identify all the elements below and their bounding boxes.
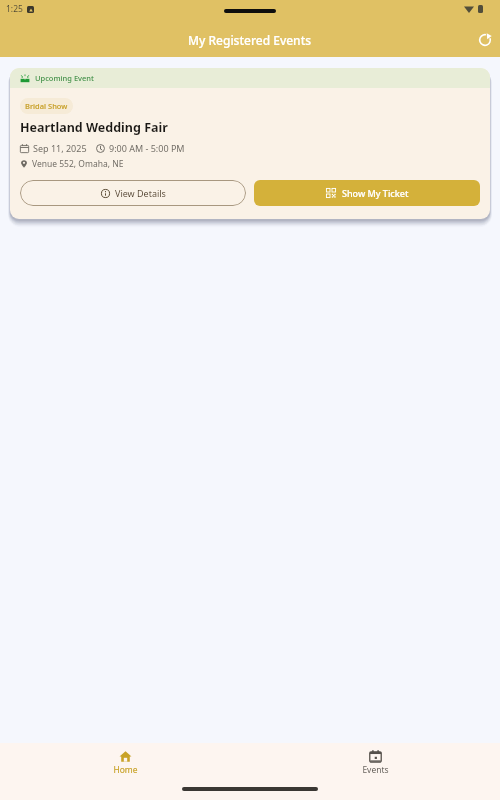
staticText: 9:00 AM - 5:00 PM: [109, 142, 185, 154]
staticText: Home: [113, 764, 138, 776]
staticText: Bridal Show: [25, 101, 68, 111]
staticText: Show My Ticket: [342, 187, 409, 199]
staticText: Heartland Wedding Fair: [20, 119, 168, 136]
button[interactable]: Refresh: [472, 27, 498, 53]
button[interactable]: Show My Ticket: [254, 180, 480, 206]
button[interactable]: Home: [0, 750, 250, 776]
button[interactable]: Events: [250, 750, 500, 776]
staticText: Events: [362, 764, 389, 776]
staticText: Upcoming Event: [35, 73, 94, 83]
staticText: 1:25: [6, 3, 23, 15]
staticText: Sep 11, 2025: [33, 142, 87, 154]
staticText: My Registered Events: [188, 32, 312, 48]
staticText: View Details: [115, 187, 166, 199]
button[interactable]: View Details: [20, 180, 246, 206]
staticText: Venue 552, Omaha, NE: [32, 158, 124, 170]
